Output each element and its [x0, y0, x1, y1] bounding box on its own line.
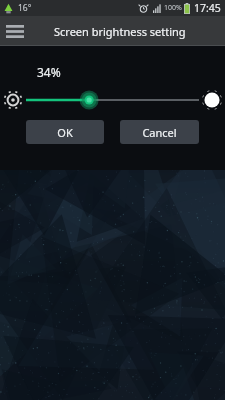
- staticText: OK: [57, 125, 73, 140]
- staticText: Screen brightness setting: [54, 24, 186, 39]
- staticText: 34%: [37, 64, 61, 80]
- staticText: 100%: [164, 3, 182, 13]
- button[interactable]: Menu: [2, 18, 28, 44]
- button[interactable]: OK: [26, 120, 104, 144]
- staticText: Cancel: [142, 125, 177, 140]
- button[interactable]: Cancel: [120, 120, 199, 144]
- button[interactable]: Brightness slider: [26, 87, 199, 113]
- staticText: 17:45: [194, 1, 221, 15]
- staticText: 16°: [18, 2, 32, 14]
